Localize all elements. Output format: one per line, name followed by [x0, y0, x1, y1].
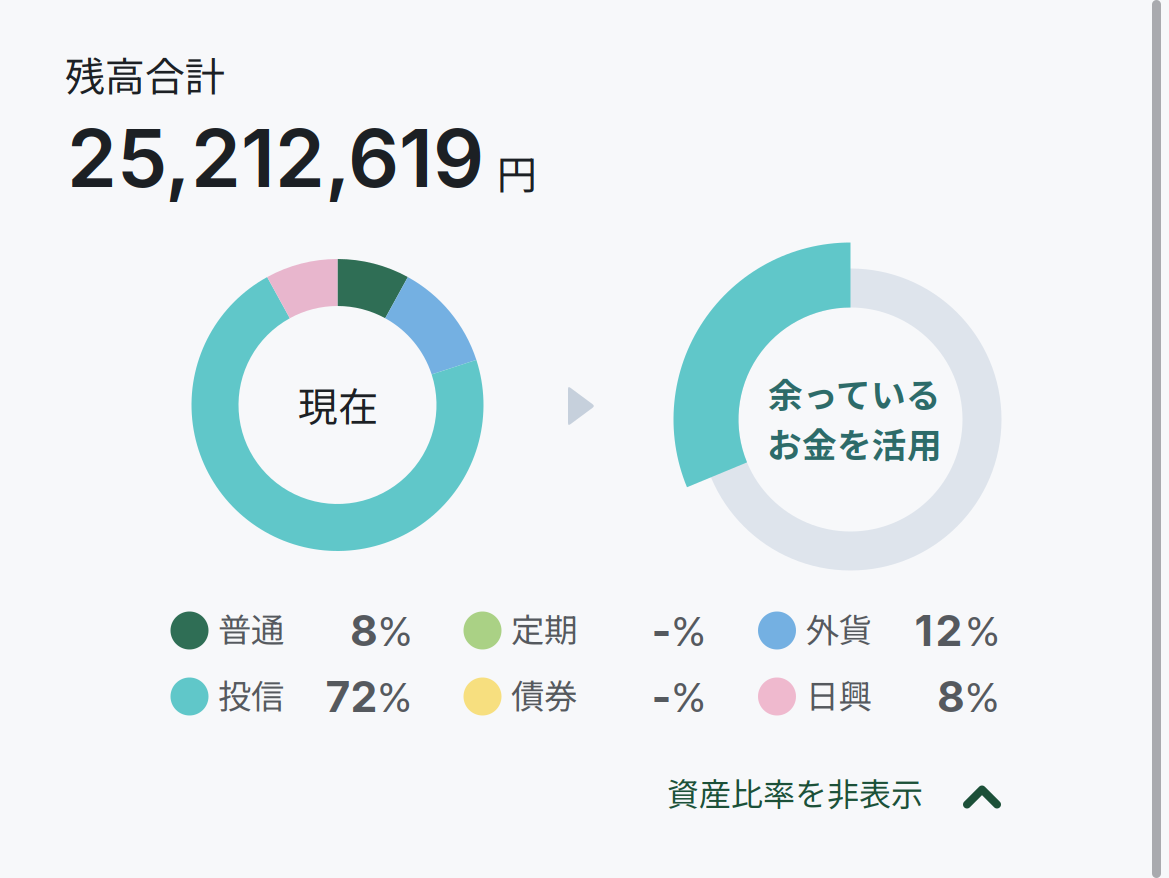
- staticText: 8%: [350, 605, 412, 656]
- staticText: 日興: [805, 670, 871, 718]
- staticText: 8%: [937, 671, 999, 722]
- staticText: 72%: [325, 671, 411, 722]
- staticText: 12%: [914, 605, 999, 656]
- staticText: 定期: [511, 604, 577, 652]
- staticText: 外貨: [805, 604, 871, 652]
- staticText: 普通: [218, 604, 284, 652]
- staticText: 投信: [218, 670, 284, 718]
- staticText: -%: [651, 671, 705, 722]
- staticText: 25,212,619: [67, 110, 484, 206]
- button[interactable]: 資産比率を非表示: [667, 755, 999, 829]
- staticText: 現在: [298, 375, 378, 433]
- button[interactable]: 余っているお金を活用: [0, 0, 1169, 878]
- staticText: 残高合計: [65, 45, 225, 103]
- staticText: -%: [651, 605, 705, 656]
- staticText: 資産比率を非表示: [667, 769, 923, 815]
- staticText: お金を活用: [767, 418, 942, 468]
- staticText: 円: [497, 143, 537, 201]
- staticText: 債券: [511, 670, 577, 718]
- staticText: 余っている: [768, 368, 941, 418]
